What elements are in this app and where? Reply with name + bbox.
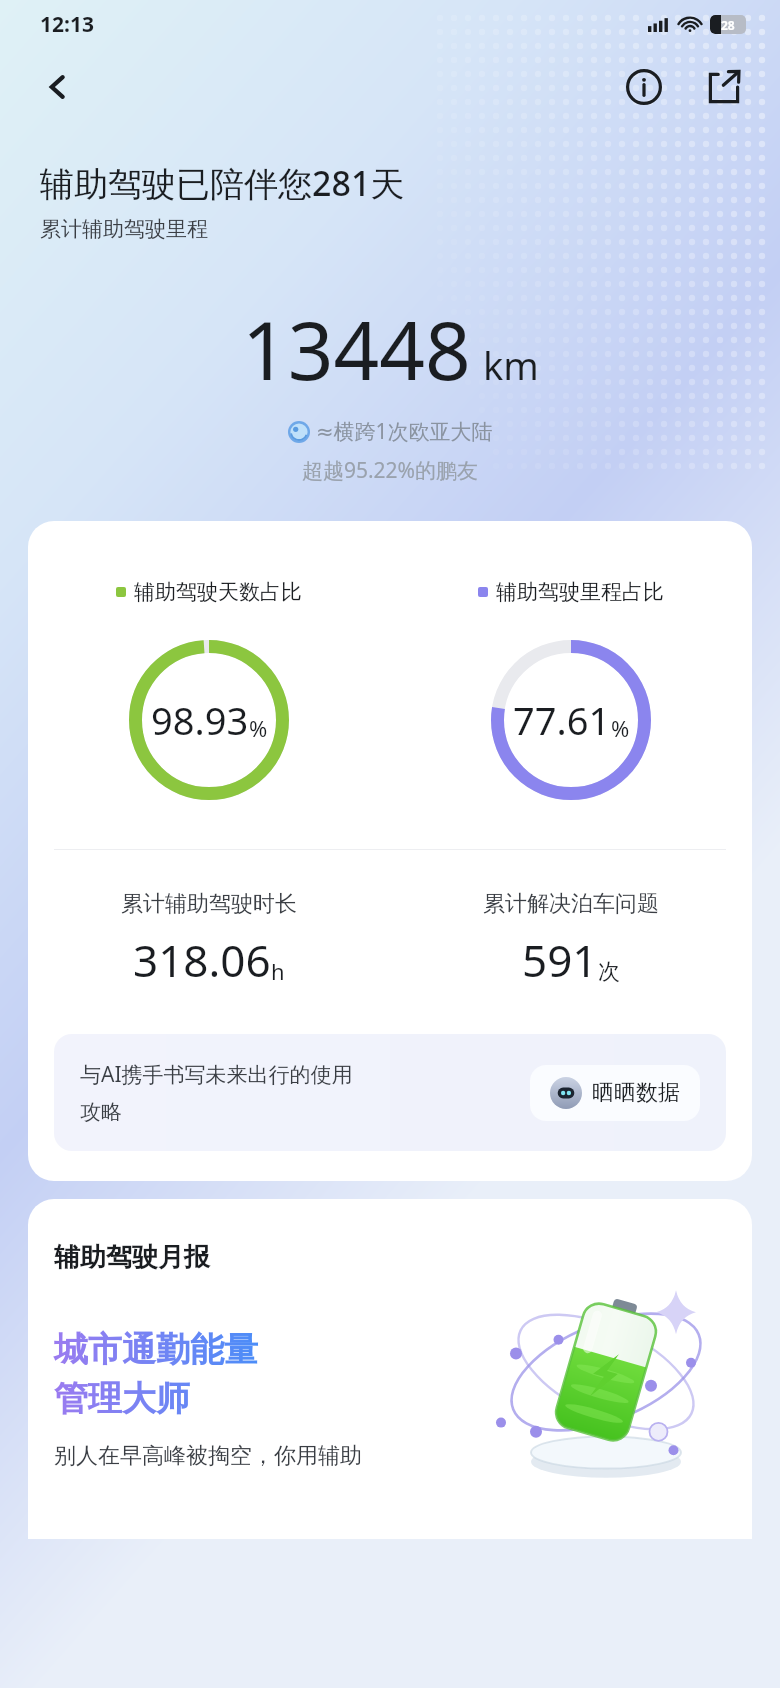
staticText: h: [271, 956, 285, 986]
staticText: 辅助驾驶里程占比: [496, 579, 664, 605]
staticText: 城市通勤能量 管理大师: [54, 1328, 258, 1420]
staticText: 辅助驾驶月报: [54, 1241, 210, 1274]
button[interactable]: 辅助驾驶月报: [28, 1199, 752, 1539]
button[interactable]: Info: [618, 61, 670, 113]
staticText: 超越95.22%的鹏友: [0, 456, 780, 485]
staticText: 辅助驾驶天数占比: [134, 579, 302, 605]
staticText: 晒晒数据: [592, 1079, 680, 1107]
button[interactable]: 与AI携手书写未来出行的使用 攻略: [54, 1034, 726, 1151]
staticText: 591: [522, 930, 598, 990]
staticText: 累计辅助驾驶时长: [121, 890, 297, 918]
staticText: %: [611, 713, 630, 743]
staticText: 别人在早高峰被掏空，你用辅助: [54, 1442, 362, 1470]
staticText: ≈横跨1次欧亚大陆: [316, 417, 493, 446]
staticText: 与AI携手书写未来出行的使用 攻略: [80, 1060, 353, 1125]
staticText: 28: [721, 17, 735, 33]
staticText: km: [483, 339, 539, 391]
button[interactable]: Back: [32, 61, 84, 113]
staticText: 98.93: [151, 694, 249, 746]
button[interactable]: Share: [698, 61, 750, 113]
staticText: 累计辅助驾驶里程: [40, 216, 208, 242]
staticText: 辅助驾驶已陪伴您281天: [40, 160, 405, 206]
staticText: 次: [598, 958, 620, 986]
staticText: 12:13: [40, 10, 94, 39]
staticText: 318.06: [133, 930, 271, 990]
staticText: %: [249, 713, 268, 743]
staticText: 13448: [242, 294, 471, 403]
staticText: 77.61: [513, 694, 611, 746]
button[interactable]: 辅助驾驶天数占比: [28, 521, 752, 1181]
button[interactable]: 晒晒数据: [530, 1065, 700, 1121]
staticText: 累计解决泊车问题: [483, 890, 659, 918]
